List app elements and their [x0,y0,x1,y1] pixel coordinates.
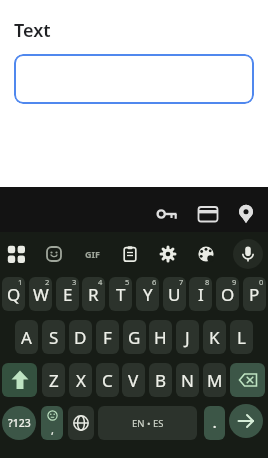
button[interactable]: , [41,406,63,440]
button[interactable] [197,245,215,263]
button[interactable]: U [163,277,186,311]
button[interactable]: E [56,277,79,311]
staticText: P [249,283,260,306]
button[interactable]: M [203,363,226,397]
staticText: 8 [205,277,210,287]
button[interactable]: . [204,406,225,440]
button[interactable]: V [122,363,145,397]
button[interactable]: N [176,363,199,397]
staticText: H [154,326,167,349]
staticText: Q [7,283,21,306]
staticText: 9 [232,277,237,287]
staticText: V [128,369,139,392]
button[interactable] [68,406,94,440]
staticText: Z [49,369,59,392]
staticText: U [168,283,181,306]
staticText: M [207,369,223,392]
staticText: 2 [45,277,50,287]
button[interactable]: J [176,320,199,354]
button[interactable]: D [69,320,92,354]
button[interactable]: Q [2,277,25,311]
button[interactable]: T [109,277,132,311]
staticText: N [181,369,194,392]
button[interactable]: C [96,363,119,397]
staticText: 3 [72,277,77,287]
staticText: , [51,422,54,437]
staticText: C [102,369,113,392]
button[interactable]: K [203,320,226,354]
staticText: GIF [85,248,100,260]
staticText: R [88,283,99,306]
button[interactable]: ?123 [2,406,36,440]
staticText: B [155,369,167,392]
staticText: G [128,326,141,349]
staticText: 5 [125,277,130,287]
button[interactable]: H [149,320,172,354]
button[interactable] [2,363,37,397]
button[interactable]: GIF [83,245,101,263]
button[interactable] [0,187,268,232]
button[interactable]: P [243,277,266,311]
staticText: Y [143,283,153,306]
staticText: A [21,326,32,349]
button[interactable]: S [42,320,65,354]
button[interactable]: R [82,277,105,311]
button[interactable]: G [123,320,146,354]
staticText: 4 [98,277,103,287]
button[interactable]: Z [42,363,65,397]
staticText: D [74,326,87,349]
staticText: Text [14,18,51,43]
button[interactable]: Y [136,277,159,311]
button[interactable] [229,404,263,438]
staticText: T [116,283,126,306]
staticText: O [221,283,235,306]
staticText: 1 [18,277,23,287]
button[interactable]: L [230,320,253,354]
button[interactable]: EN • ES [98,406,197,440]
staticText: ?123 [8,416,31,430]
staticText: . [213,415,217,431]
staticText: 6 [152,277,157,287]
staticText: E [63,283,73,306]
staticText: S [49,326,59,349]
button[interactable]: A [15,320,38,354]
staticText: EN • ES [132,417,164,430]
staticText: F [103,326,112,349]
button[interactable] [230,363,265,397]
staticText: X [76,369,86,392]
staticText: I [198,283,204,306]
button[interactable]: W [29,277,52,311]
staticText: W [33,283,49,306]
button[interactable] [121,245,139,263]
staticText: 0 [259,277,264,287]
staticText: L [237,326,246,349]
staticText: J [185,326,190,349]
button[interactable] [233,239,263,269]
staticText: 7 [179,277,184,287]
button[interactable]: X [69,363,92,397]
button[interactable] [7,245,25,263]
staticText: K [209,326,220,349]
button[interactable]: I [189,277,212,311]
button[interactable] [45,245,63,263]
button[interactable]: B [149,363,172,397]
button[interactable] [14,54,254,104]
button[interactable]: F [96,320,119,354]
button[interactable] [159,245,177,263]
button[interactable]: O [216,277,239,311]
